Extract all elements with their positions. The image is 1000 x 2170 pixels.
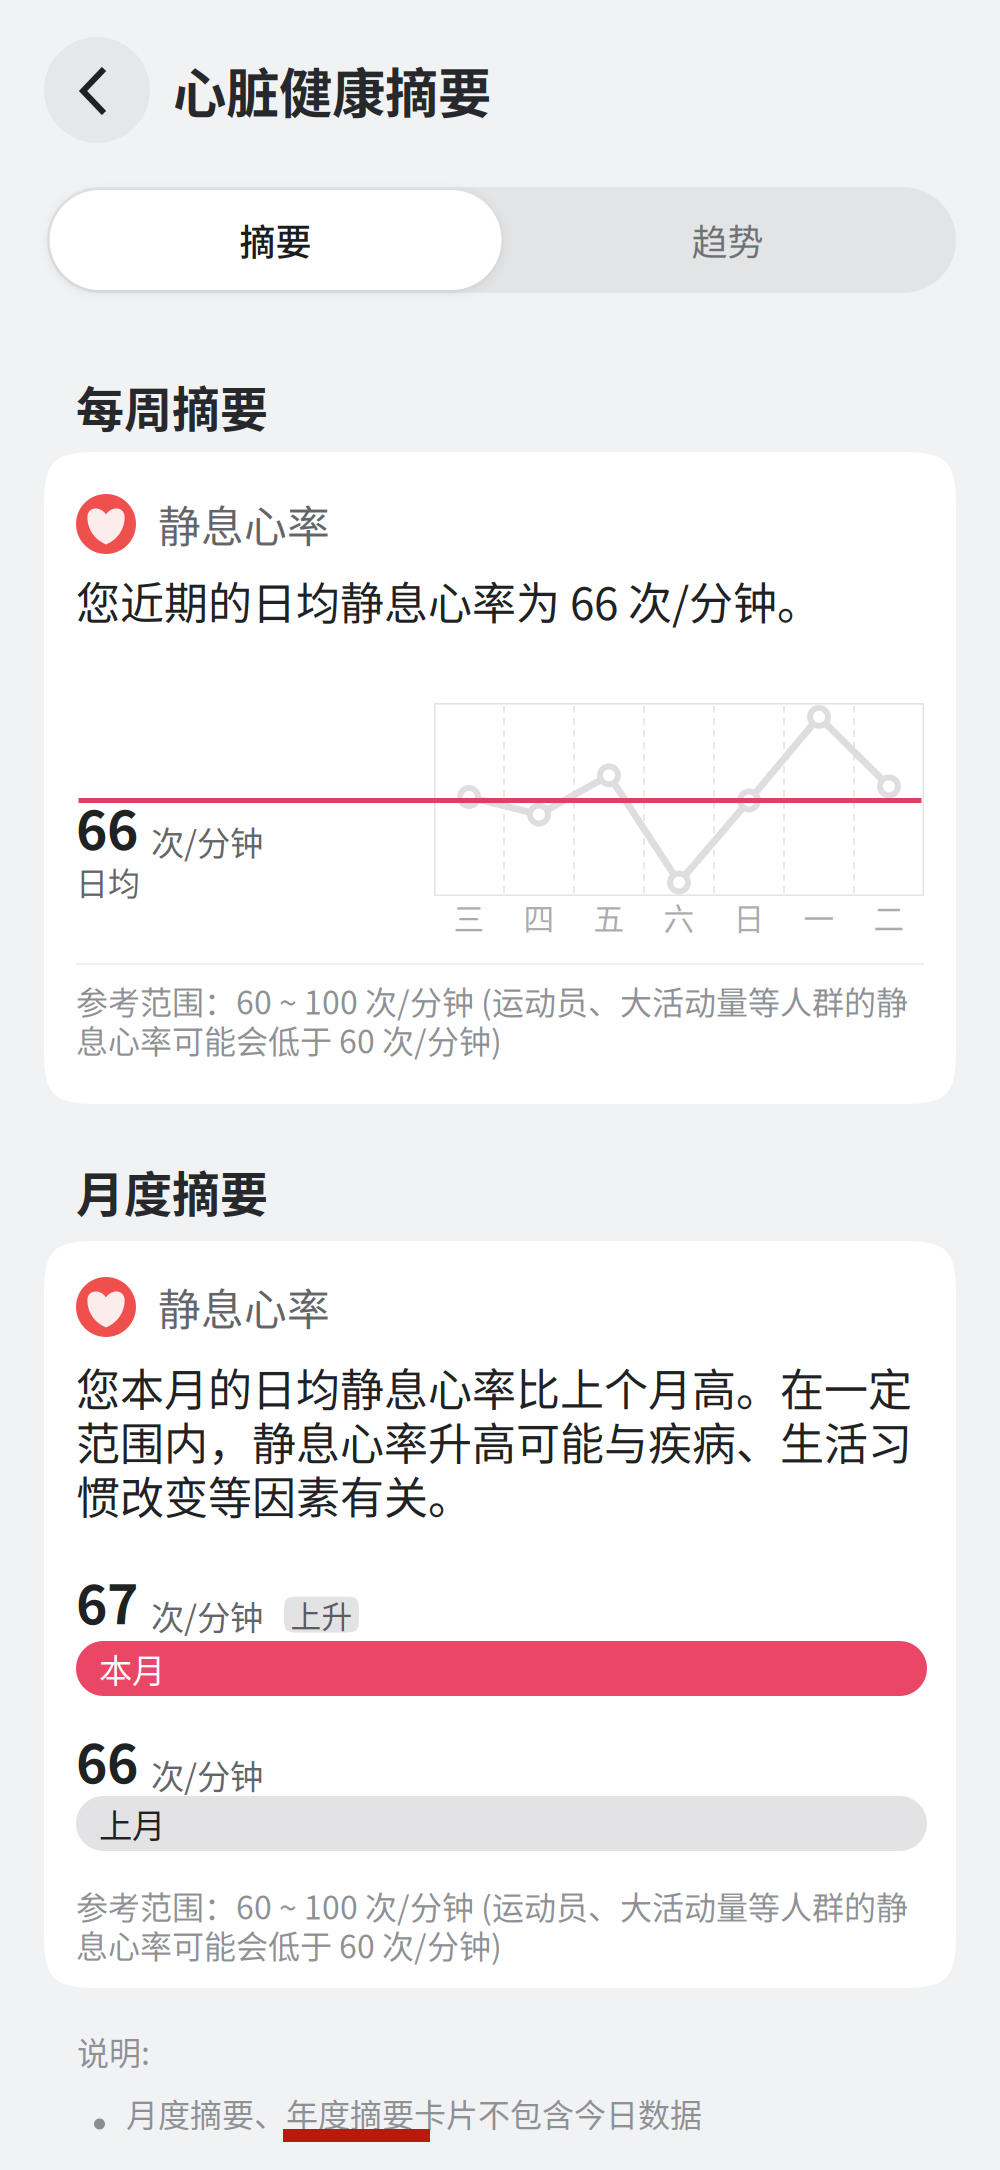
staticText: 四 <box>523 895 554 939</box>
staticText: 静息心率 <box>158 493 330 555</box>
staticText: 每周摘要 <box>76 371 268 441</box>
staticText: 参考范围：60 ~ 100 次/分钟 (运动员、大活动量等人群的静 <box>76 1882 908 1929</box>
staticText: 摘要 <box>239 214 311 266</box>
staticText: 二 <box>873 895 904 939</box>
staticText: 静息心率 <box>158 1276 330 1338</box>
staticText: 参考范围：60 ~ 100 次/分钟 (运动员、大活动量等人群的静 <box>76 977 908 1024</box>
staticText: 息心率可能会低于 60 次/分钟) <box>76 1921 502 1968</box>
staticText: 66 <box>76 1721 138 1799</box>
staticText: 五 <box>593 895 624 939</box>
staticText: 心脏健康摘要 <box>173 51 491 129</box>
staticText: 上升 <box>290 1592 352 1637</box>
staticText: 范围内，静息心率升高可能与疾病、生活习 <box>76 1409 912 1473</box>
staticText: 趋势 <box>691 214 763 266</box>
staticText: 次/分钟 <box>151 1750 263 1799</box>
staticText: 月度摘要 <box>76 1156 268 1226</box>
staticText: 六 <box>663 895 694 939</box>
button[interactable]: 趋势 <box>501 190 953 290</box>
staticText: 说明: <box>77 2028 150 2074</box>
staticText: 一 <box>803 895 834 939</box>
staticText: 惯改变等因素有关。 <box>76 1463 472 1527</box>
staticText: 本月 <box>99 1644 165 1693</box>
staticText: 67 <box>76 1562 138 1640</box>
button[interactable]: 摘要 <box>49 190 501 290</box>
staticText: 三 <box>453 895 484 939</box>
staticText: 次/分钟 <box>151 817 263 865</box>
staticText: 66 <box>76 788 138 865</box>
staticText: 上月 <box>99 1799 165 1848</box>
staticText: 您本月的日均静息心率比上个月高。在一定 <box>76 1355 912 1419</box>
staticText: 您近期的日均静息心率为 66 次/分钟。 <box>76 569 821 632</box>
staticText: 日 <box>733 895 764 939</box>
staticText: 次/分钟 <box>151 1591 263 1640</box>
staticText: 息心率可能会低于 60 次/分钟) <box>76 1016 502 1063</box>
staticText: 月度摘要、年度摘要卡片不包含今日数据 <box>126 2090 702 2136</box>
staticText: 日均 <box>76 858 140 905</box>
button[interactable]: 返回 <box>44 37 150 143</box>
